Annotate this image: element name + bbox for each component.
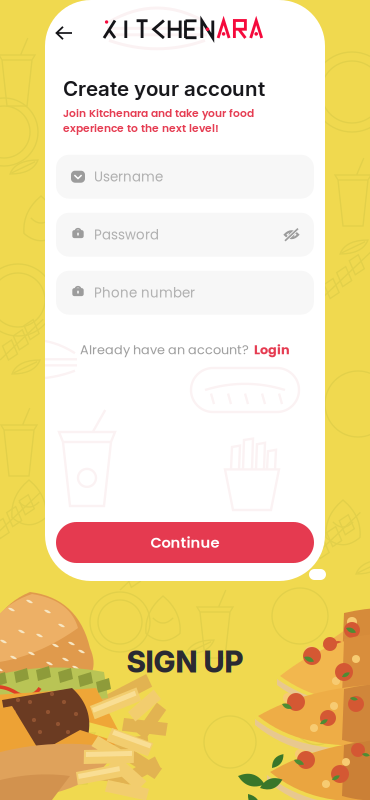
- staticText: Login: [254, 341, 290, 359]
- staticText: SIGN UP: [126, 644, 243, 679]
- staticText: Phone number: [94, 283, 195, 302]
- button[interactable]: Back: [55, 17, 79, 43]
- button[interactable]: Continue: [56, 522, 314, 563]
- staticText: Already have an account?: [80, 341, 249, 359]
- staticText: Username: [94, 167, 163, 186]
- button[interactable]: Show password: [284, 227, 299, 242]
- button[interactable]: Login: [254, 341, 290, 359]
- staticText: Password: [94, 225, 159, 244]
- staticText: Create your account: [63, 76, 265, 101]
- staticText: Continue: [150, 532, 219, 553]
- staticText: Join Kitchenara and take your food: [63, 106, 254, 121]
- staticText: experience to the next level!: [63, 121, 219, 136]
